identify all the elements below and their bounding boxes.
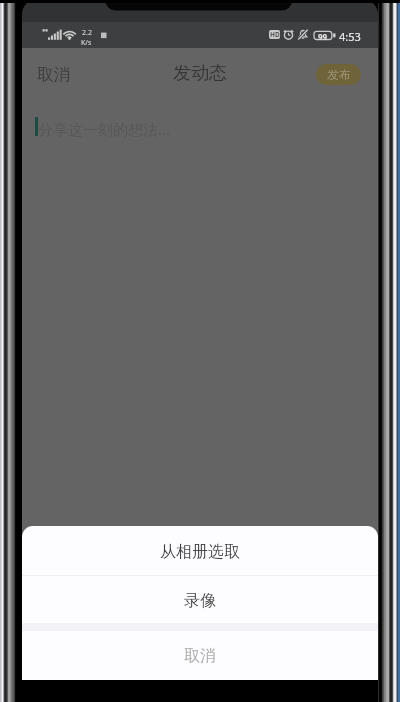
staticText: 分享这一刻的想法...: [38, 119, 171, 139]
staticText: 从相册选取: [160, 542, 240, 562]
staticText: 2.2: [82, 28, 92, 38]
staticText: 99: [318, 31, 328, 40]
button[interactable]: 发布: [316, 64, 361, 85]
staticText: HD: [270, 30, 280, 39]
staticText: 取消: [184, 646, 216, 666]
button[interactable]: 从相册选取: [22, 526, 378, 575]
staticText: 录像: [184, 591, 216, 611]
button[interactable]: 取消: [27, 55, 80, 94]
button[interactable]: 取消: [22, 631, 378, 679]
staticText: 取消: [37, 64, 70, 85]
staticText: K/s: [81, 38, 92, 48]
button[interactable]: 录像: [22, 576, 378, 623]
staticText: 4:53: [339, 29, 361, 44]
staticText: 发动态: [173, 62, 227, 85]
staticText: 发布: [327, 67, 351, 82]
